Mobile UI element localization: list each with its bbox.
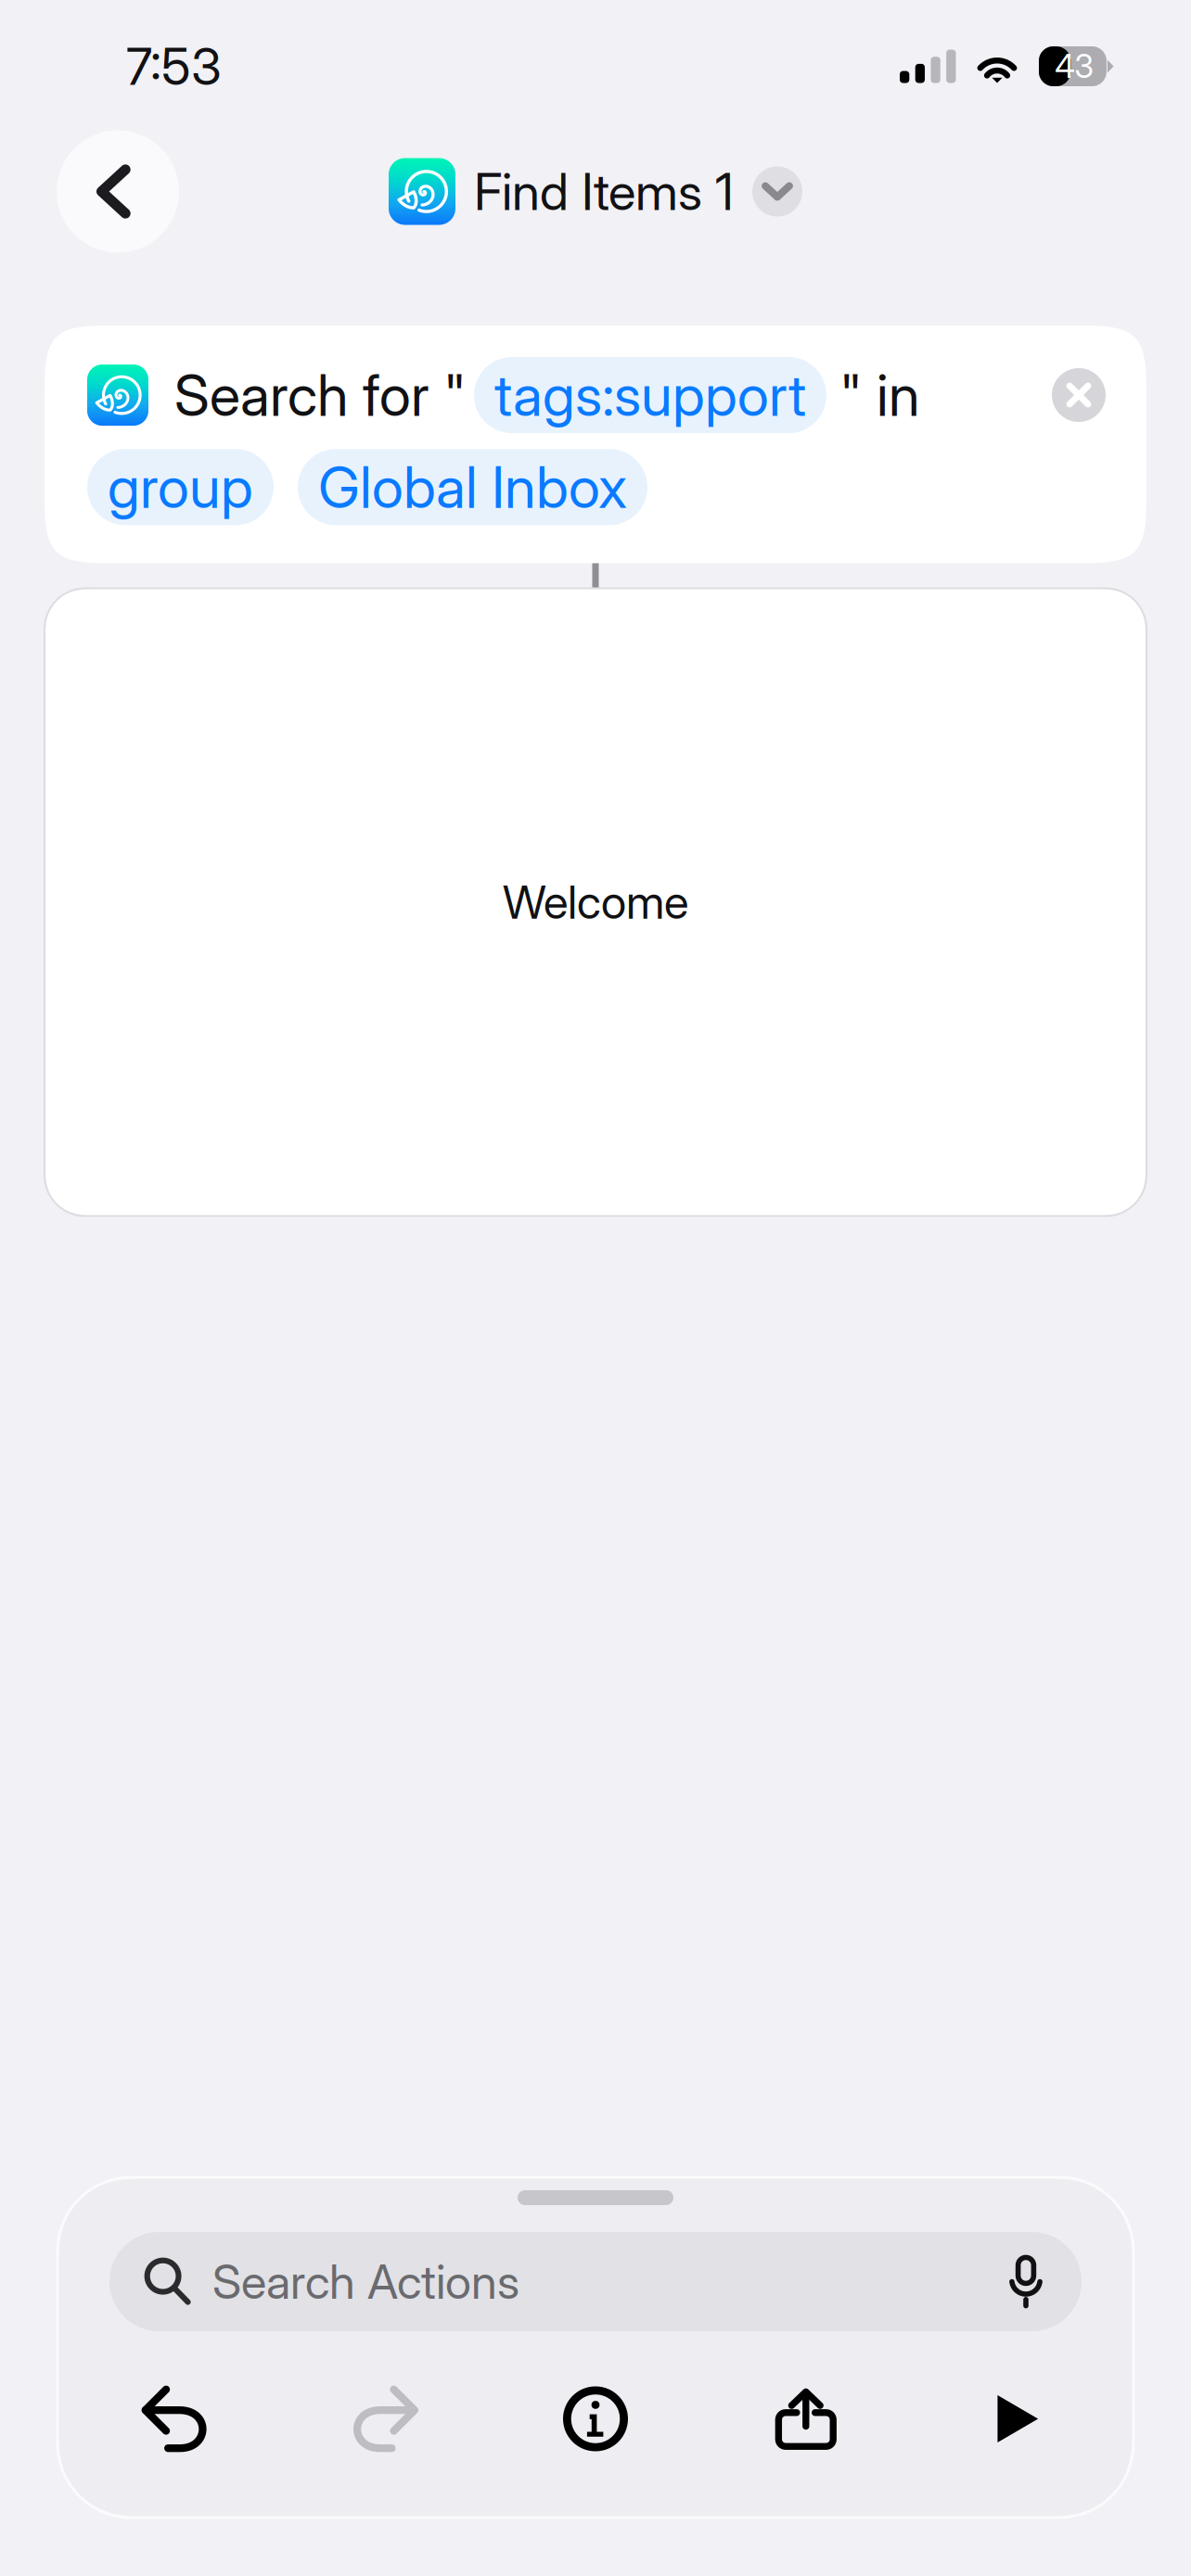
button[interactable]: Undo (70, 2358, 280, 2480)
button[interactable]: Run (911, 2358, 1121, 2480)
button[interactable]: Welcome (45, 588, 1146, 1216)
button[interactable]: Share (701, 2358, 911, 2480)
button[interactable]: Back (57, 130, 179, 253)
staticText: Welcome (503, 875, 688, 930)
button[interactable]: Search for " (45, 325, 1146, 563)
button[interactable]: Find Items 1 (0, 158, 1191, 225)
staticText: Search Actions (212, 2253, 519, 2310)
button[interactable]: Info (490, 2358, 701, 2480)
staticText: Global Inbox (318, 453, 627, 522)
staticText: Find Items 1 (474, 161, 734, 222)
button[interactable]: Search Actions (109, 2232, 1082, 2331)
staticText: 7:53 (126, 36, 222, 97)
staticText: Search for " (174, 361, 467, 430)
staticText: " in (839, 361, 920, 430)
staticText: group (108, 453, 253, 522)
staticText: tags:support (494, 361, 806, 430)
button[interactable]: Redo (280, 2358, 490, 2480)
staticText: 43 (1055, 47, 1094, 86)
